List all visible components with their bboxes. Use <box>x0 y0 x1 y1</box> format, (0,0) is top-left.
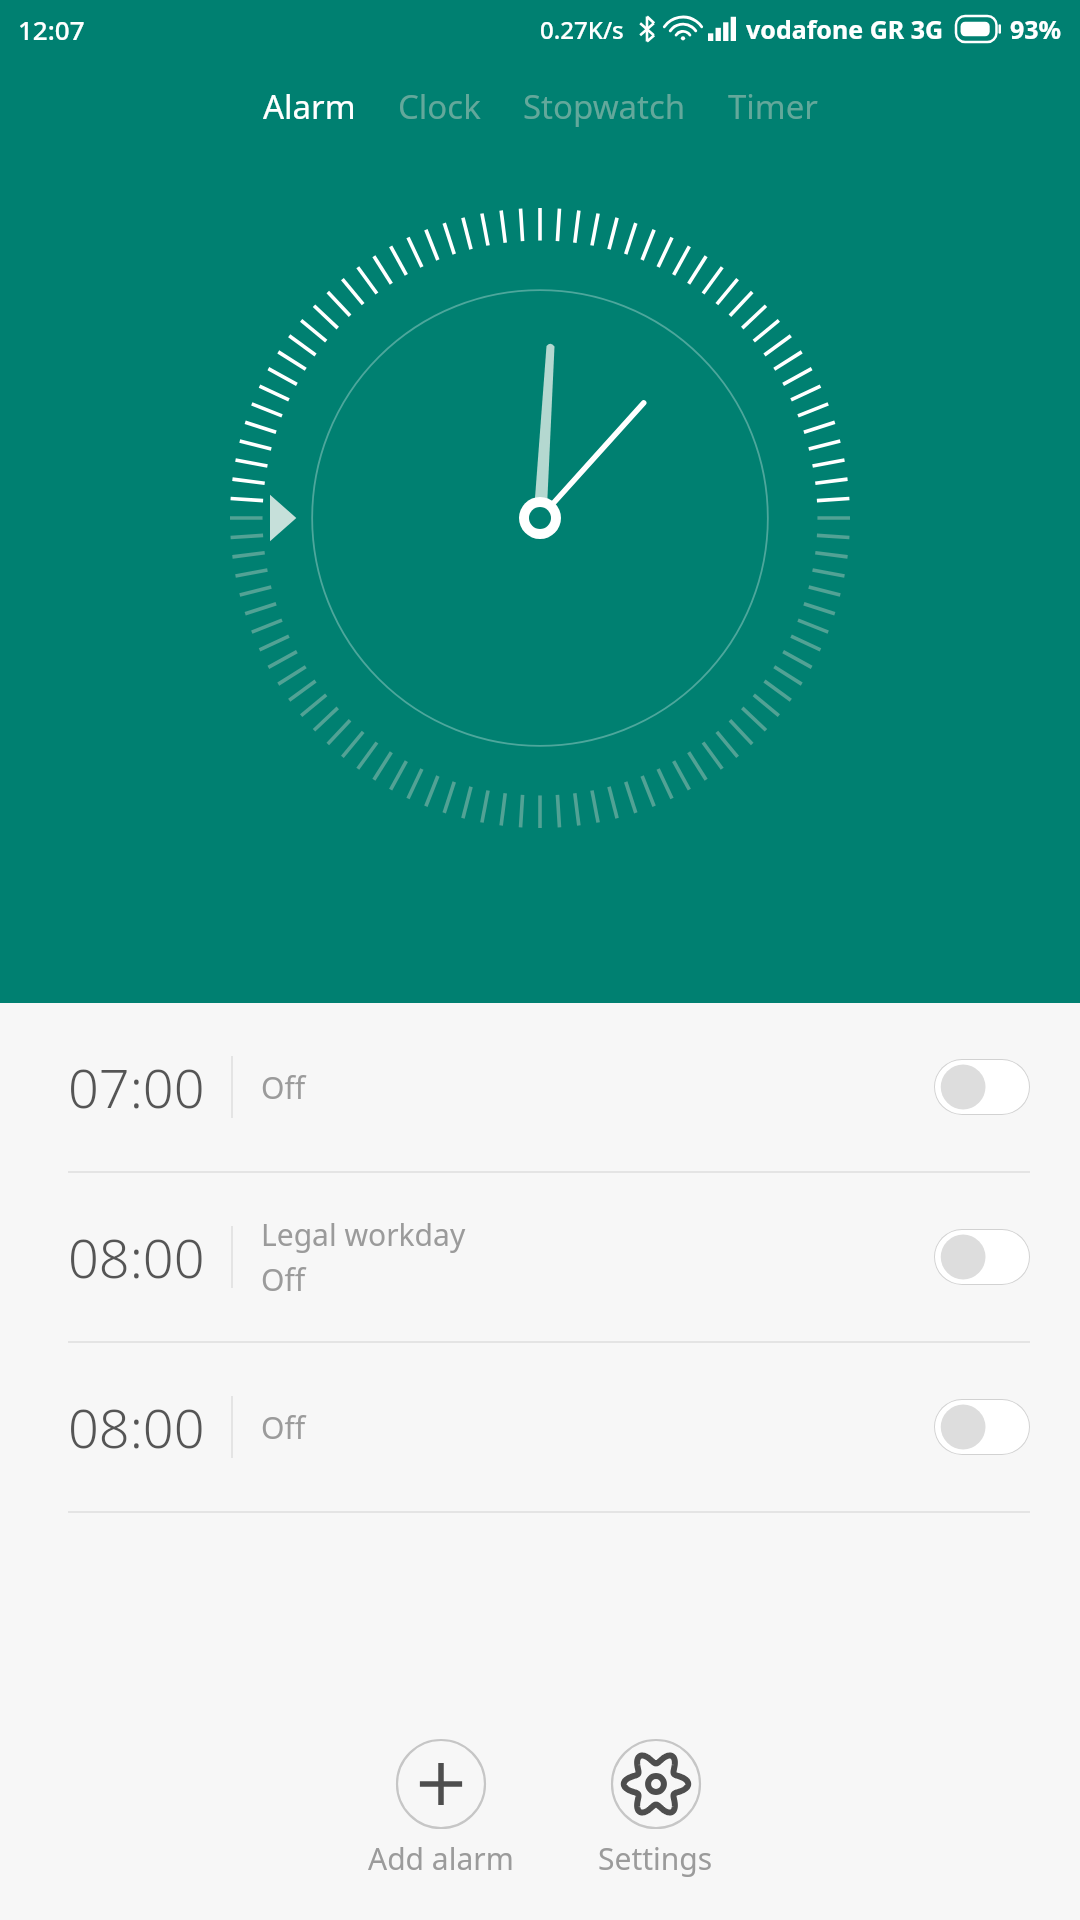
staticText: 08:00 <box>68 1220 205 1294</box>
staticText: Off <box>261 1259 306 1300</box>
staticText: 08:00 <box>68 1390 205 1464</box>
staticText: Stopwatch <box>523 84 686 129</box>
staticText: Alarm <box>263 84 356 129</box>
button[interactable]: Alarm <box>255 78 364 135</box>
button[interactable]: Toggle alarm <box>934 1229 1030 1285</box>
staticText: Off <box>261 1067 306 1108</box>
button[interactable]: Settings <box>584 1730 727 1887</box>
button[interactable]: 08:00 <box>0 1173 1080 1341</box>
staticText: vodafone GR 3G <box>746 12 944 46</box>
staticText: Off <box>261 1407 306 1448</box>
button[interactable]: Timer <box>720 78 826 135</box>
button[interactable]: Add alarm <box>354 1730 528 1887</box>
staticText: 0.27K/s <box>540 13 624 46</box>
button[interactable]: Clock <box>390 78 489 135</box>
staticText: Legal workday <box>261 1214 466 1255</box>
staticText: 93% <box>1010 12 1062 46</box>
staticText: 12:07 <box>18 12 85 47</box>
staticText: Clock <box>398 84 481 129</box>
button[interactable]: 07:00 <box>0 1003 1080 1171</box>
staticText: 07:00 <box>68 1050 205 1124</box>
staticText: Timer <box>728 84 818 129</box>
button[interactable]: Stopwatch <box>515 78 694 135</box>
button[interactable]: Toggle alarm <box>934 1399 1030 1455</box>
staticText: Settings <box>598 1838 713 1879</box>
button[interactable]: Toggle alarm <box>934 1059 1030 1115</box>
staticText: Add alarm <box>368 1838 514 1879</box>
button[interactable]: 08:00 <box>0 1343 1080 1511</box>
